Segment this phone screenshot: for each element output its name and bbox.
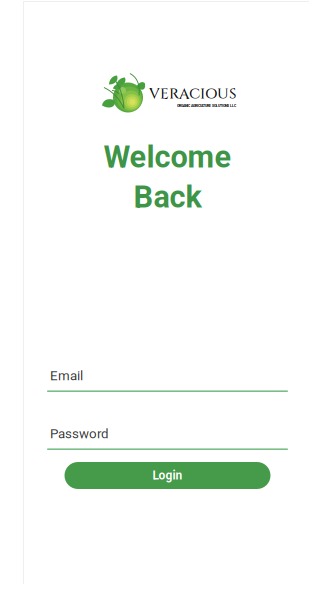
staticText: ORGANIC AGRICULTURE SOLUTIONS LLC (177, 104, 236, 108)
staticText: Password (50, 426, 109, 442)
staticText: Email (50, 368, 83, 384)
staticText: Login (152, 468, 182, 483)
staticText: VERACIOUS (149, 84, 236, 104)
button[interactable]: Login (64, 462, 270, 489)
staticText: Welcome (103, 139, 231, 175)
staticText: Back (133, 179, 201, 215)
